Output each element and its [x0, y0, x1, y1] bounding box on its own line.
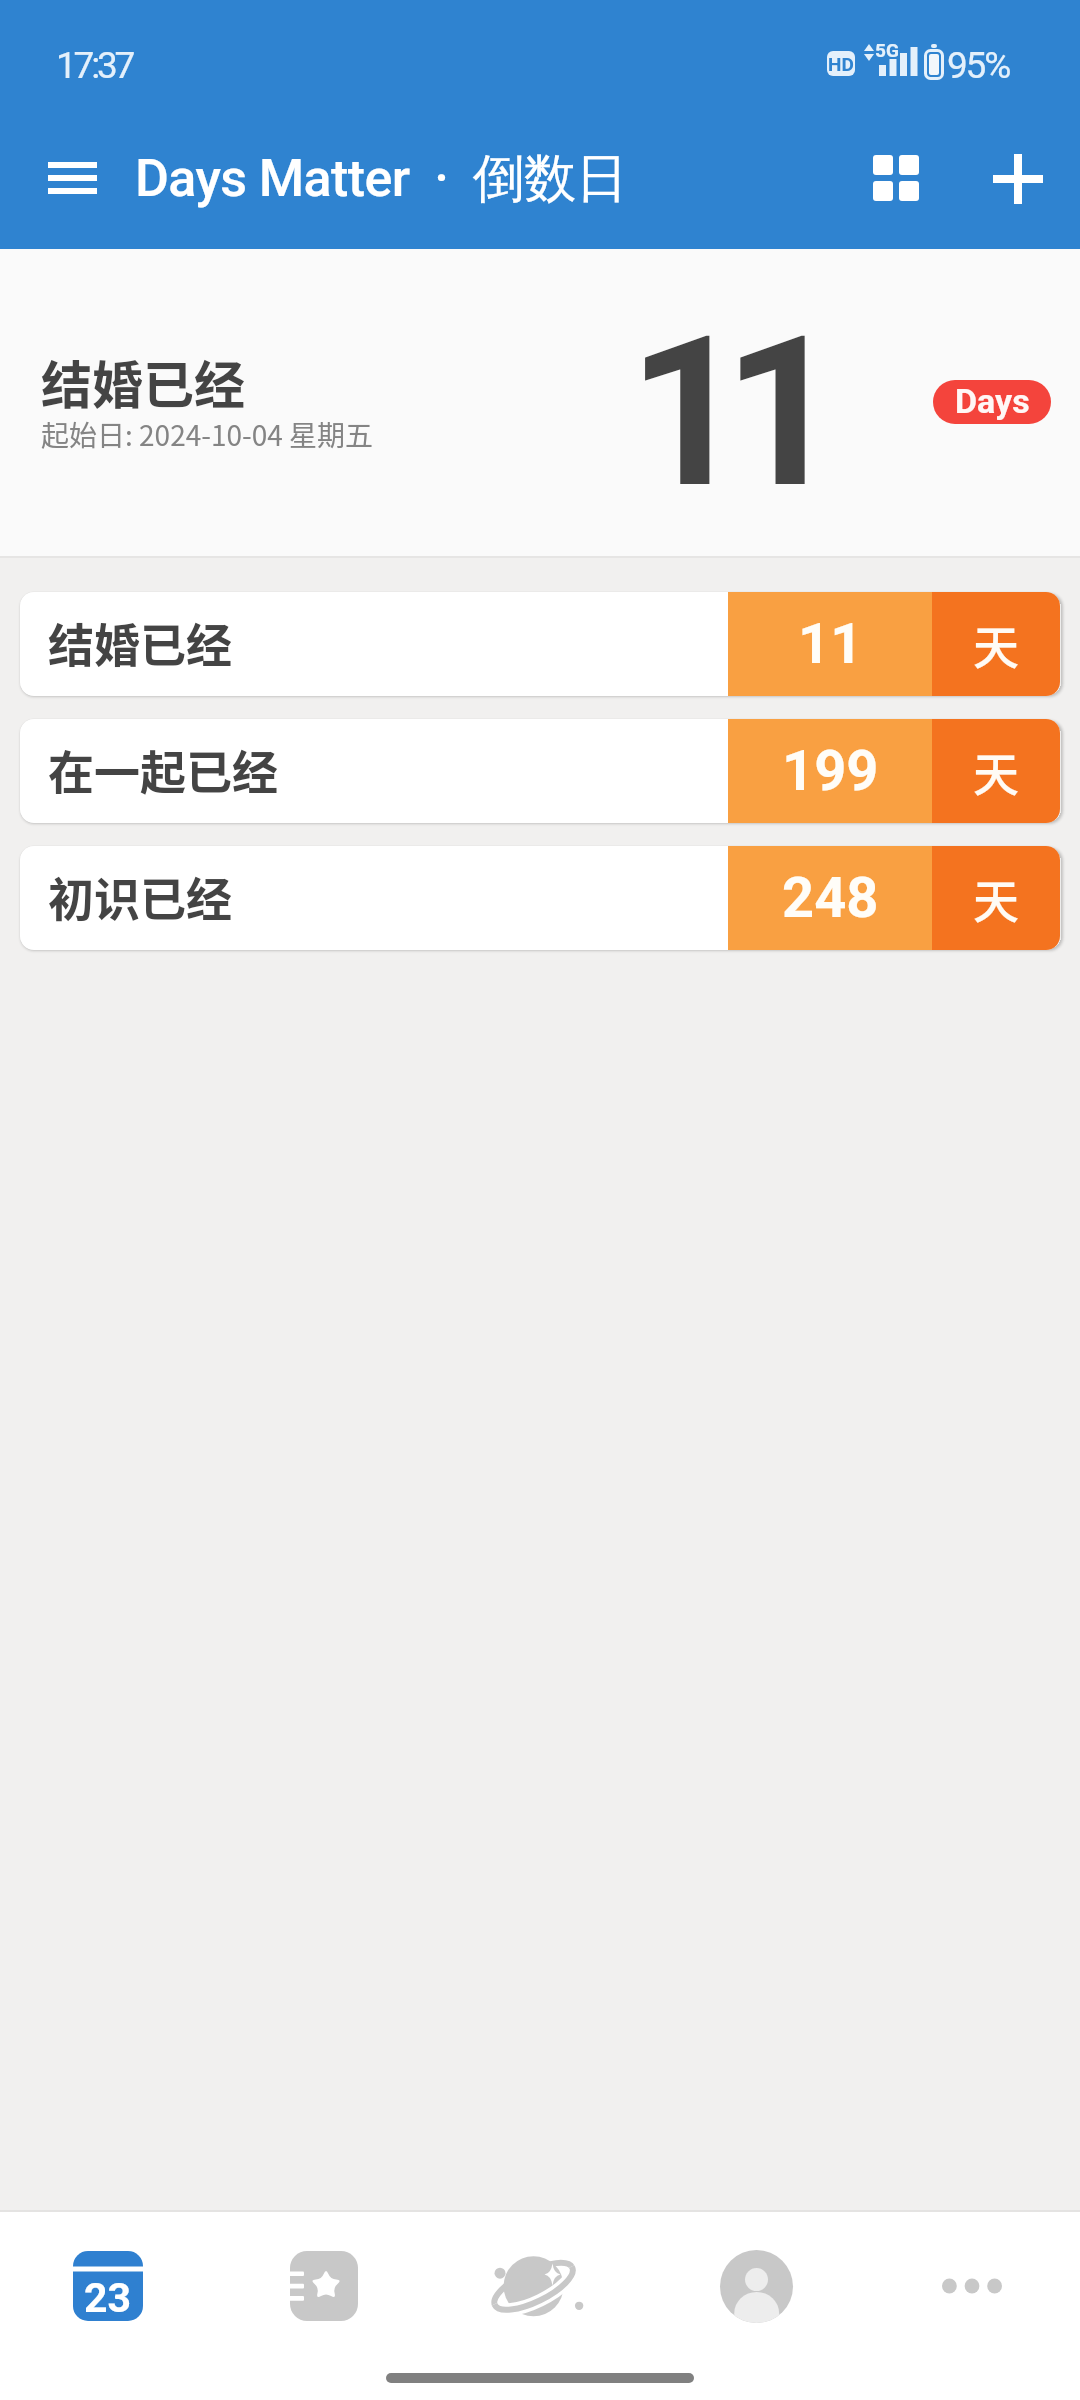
button[interactable]: 结婚已经: [20, 592, 1060, 696]
button[interactable]: Open navigation menu: [30, 136, 114, 220]
button[interactable]: 结婚已经: [0, 249, 1080, 556]
staticText: 199: [782, 738, 879, 804]
button[interactable]: Days: [933, 380, 1051, 424]
button[interactable]: Discover tab: [432, 2212, 648, 2360]
button[interactable]: Add new countdown: [971, 132, 1065, 226]
button[interactable]: 初识已经: [20, 846, 1060, 950]
staticText: 天: [973, 738, 1019, 805]
staticText: 5G: [875, 39, 899, 61]
staticText: 17:37: [56, 44, 133, 87]
staticText: 95%: [947, 44, 1010, 87]
staticText: 11: [798, 611, 863, 677]
staticText: 初识已经: [48, 863, 232, 930]
staticText: HD: [828, 53, 854, 75]
staticText: 结婚已经: [41, 345, 246, 419]
staticText: Days: [955, 381, 1030, 421]
staticText: 起始日: 2024-10-04 星期五: [41, 414, 374, 455]
staticText: 结婚已经: [48, 609, 232, 676]
staticText: 11: [628, 291, 819, 535]
staticText: 在一起已经: [48, 736, 278, 803]
button[interactable]: Collections tab: [216, 2212, 432, 2360]
staticText: 天: [973, 865, 1019, 932]
staticText: Days Matter · 倒数日: [135, 146, 628, 212]
staticText: 248: [782, 865, 879, 931]
staticText: 天: [973, 611, 1019, 678]
button[interactable]: More options: [864, 2212, 1080, 2360]
staticText: 23: [84, 2274, 132, 2322]
button[interactable]: Switch to grid view: [849, 130, 943, 224]
button[interactable]: 在一起已经: [20, 719, 1060, 823]
button[interactable]: Countdown tab: [0, 2212, 216, 2360]
button[interactable]: Profile tab: [648, 2212, 864, 2360]
